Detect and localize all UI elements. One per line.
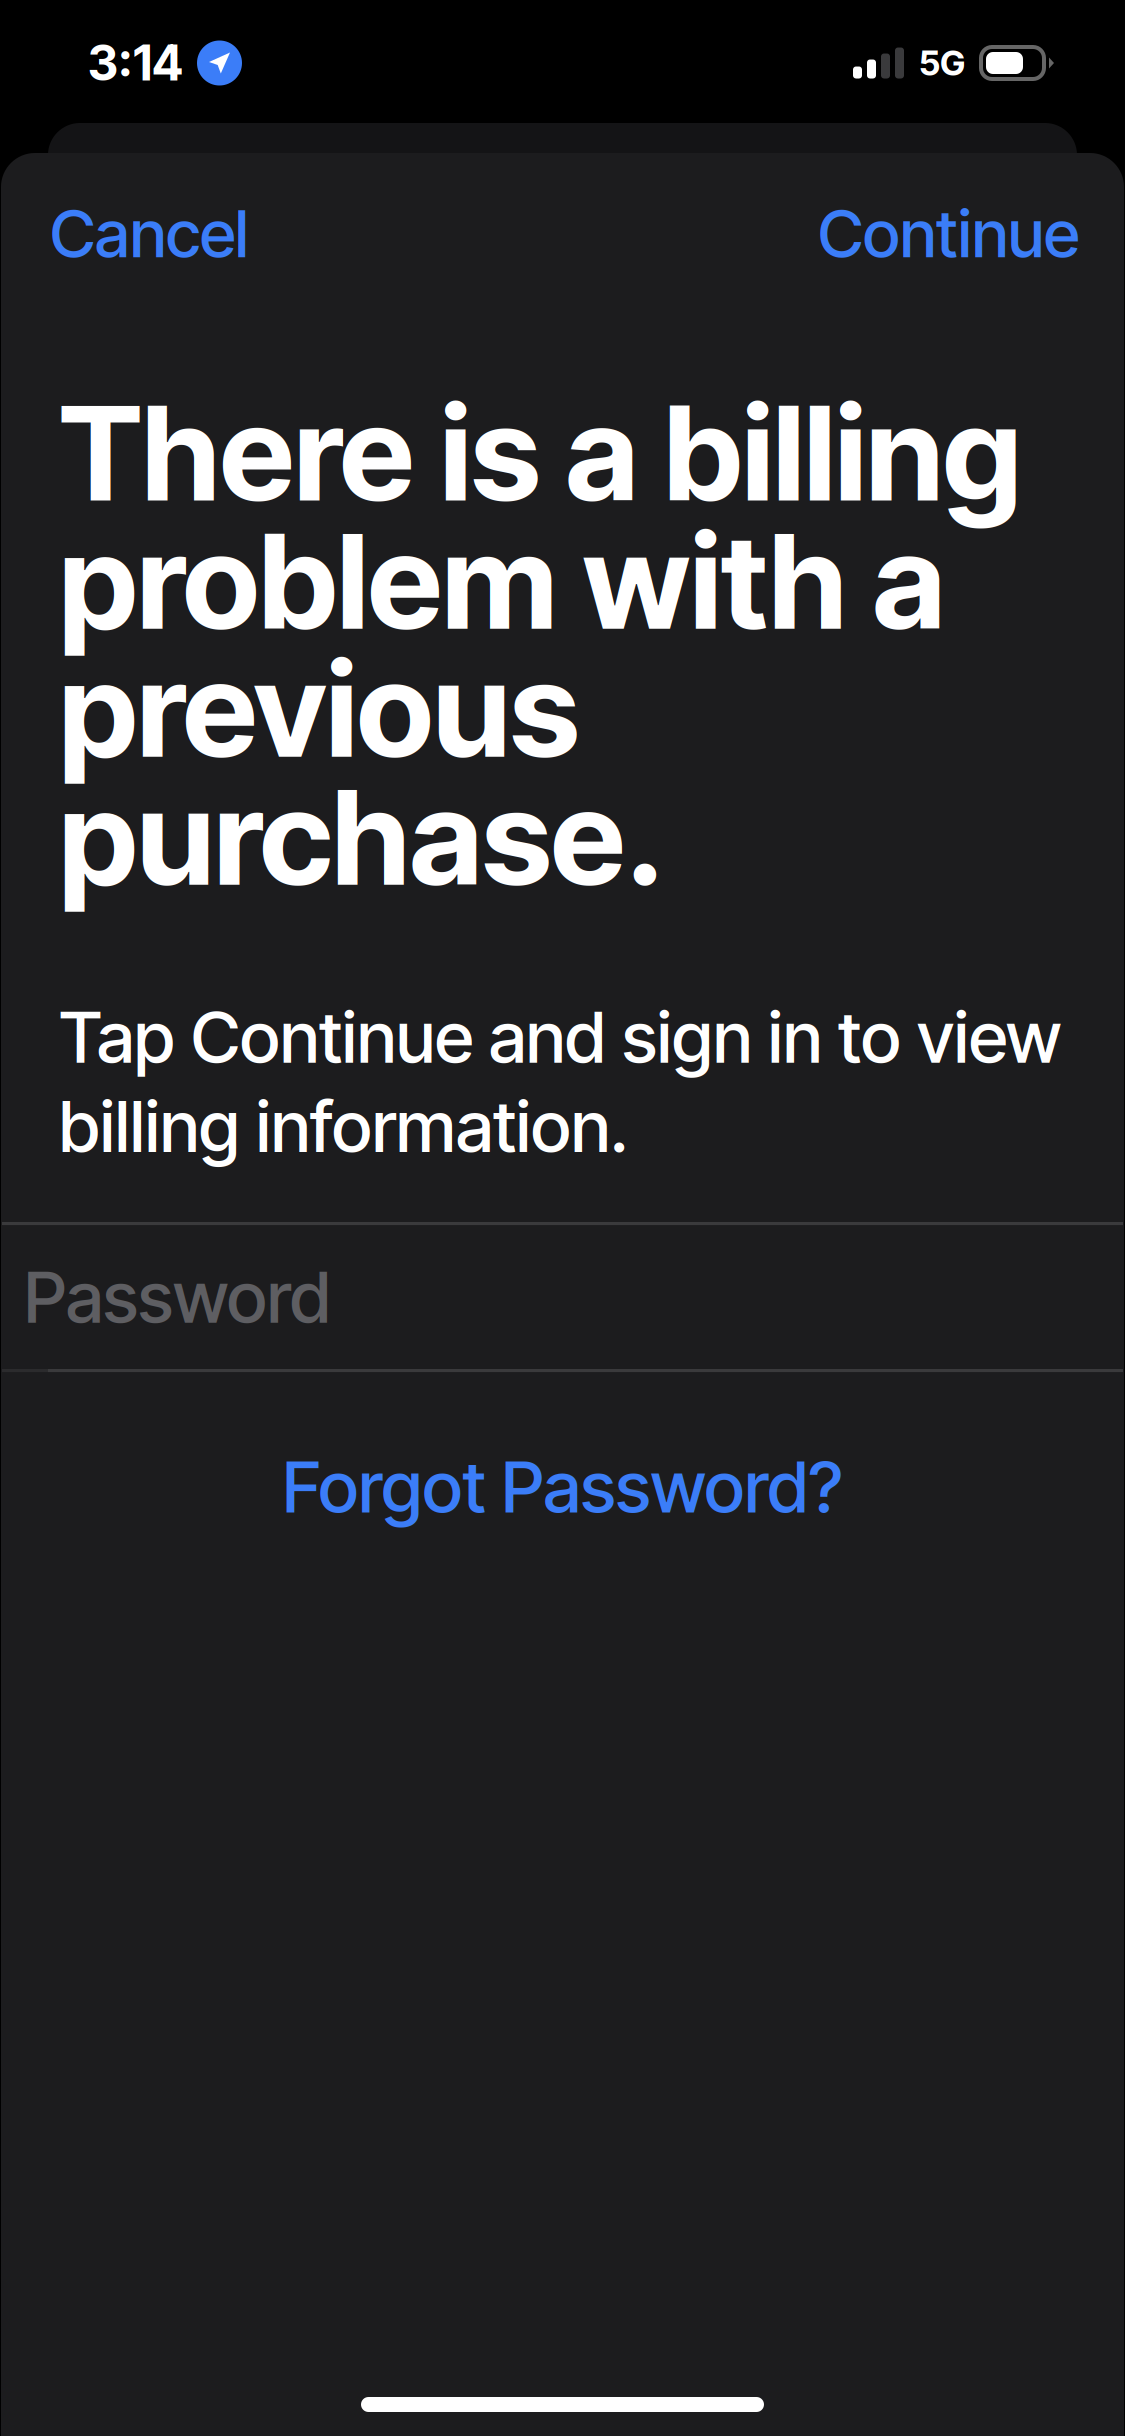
button[interactable]: Password — [2, 1225, 1123, 1369]
button[interactable]: Cancel — [2, 153, 299, 292]
staticText: 5G — [919, 42, 965, 84]
staticText: Forgot Password? — [282, 1442, 842, 1531]
staticText: There is a billing problem with a previo… — [59, 389, 1021, 901]
button[interactable]: Continue — [768, 153, 1123, 292]
staticText: Cancel — [50, 194, 249, 273]
staticText: Continue — [818, 194, 1079, 273]
staticText: 3:14 — [88, 34, 183, 92]
staticText: Tap Continue and sign in to view billing… — [59, 992, 1061, 1171]
staticText: Password — [24, 1252, 331, 1342]
button[interactable]: Forgot Password? — [2, 1414, 1123, 1559]
